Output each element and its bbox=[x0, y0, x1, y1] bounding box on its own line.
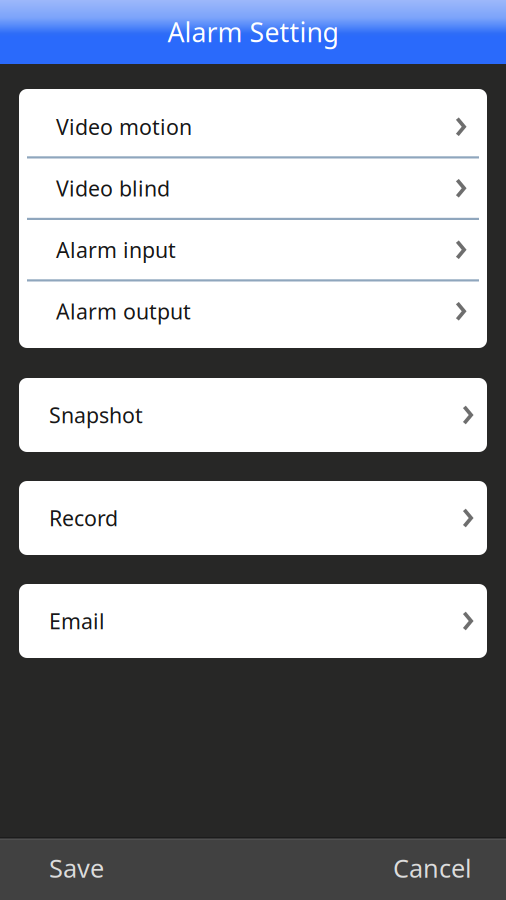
staticText: Save bbox=[49, 851, 104, 885]
staticText: Alarm input bbox=[56, 236, 176, 264]
staticText: Snapshot bbox=[49, 401, 143, 429]
button[interactable]: Alarm output bbox=[19, 280, 487, 342]
staticText: Video motion bbox=[56, 113, 192, 141]
button[interactable]: Video motion bbox=[19, 96, 487, 157]
staticText: Video blind bbox=[56, 174, 170, 202]
button[interactable]: Email bbox=[19, 584, 487, 658]
button[interactable]: Snapshot bbox=[19, 378, 487, 452]
staticText: Record bbox=[49, 504, 118, 532]
staticText: Email bbox=[49, 607, 105, 635]
staticText: Alarm Setting bbox=[167, 14, 338, 50]
button[interactable]: Video blind bbox=[19, 157, 487, 219]
button[interactable]: Save bbox=[0, 840, 253, 900]
button[interactable]: Cancel bbox=[253, 840, 506, 900]
button[interactable]: Alarm input bbox=[19, 219, 487, 280]
staticText: Alarm output bbox=[56, 297, 191, 325]
staticText: Cancel bbox=[393, 851, 472, 885]
button[interactable]: Record bbox=[19, 481, 487, 555]
